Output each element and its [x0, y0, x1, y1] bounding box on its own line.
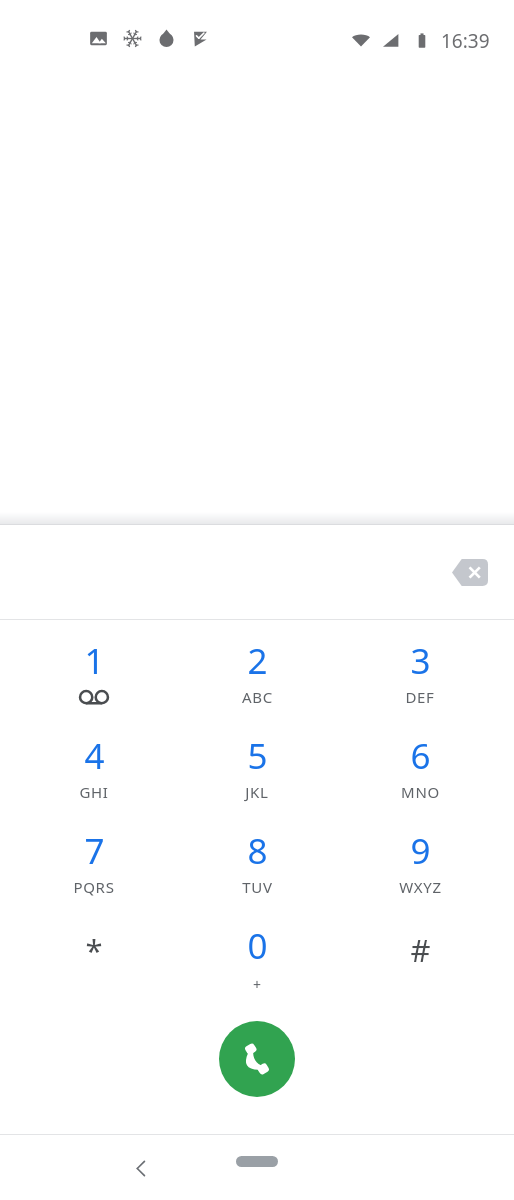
button[interactable]: 5	[182, 720, 332, 810]
staticText: TUV	[242, 877, 273, 897]
button[interactable]: #	[345, 910, 495, 1000]
button[interactable]: 1	[19, 625, 169, 715]
button[interactable]: 2	[182, 625, 332, 715]
staticText: 7	[84, 827, 105, 875]
button[interactable]: 9	[345, 815, 495, 905]
staticText: 1	[84, 637, 105, 685]
staticText: 6	[410, 732, 431, 780]
staticText: 9	[410, 827, 431, 875]
staticText: JKL	[245, 782, 269, 802]
button[interactable]: 4	[19, 720, 169, 810]
staticText: 5	[247, 732, 268, 780]
staticText: ABC	[242, 687, 273, 707]
staticText: #	[410, 929, 431, 971]
button[interactable]: Backspace	[442, 546, 498, 598]
button[interactable]: 6	[345, 720, 495, 810]
staticText: 8	[247, 827, 268, 875]
button[interactable]: 7	[19, 815, 169, 905]
staticText: 2	[247, 637, 268, 685]
staticText: PQRS	[73, 877, 115, 897]
staticText: 4	[84, 732, 105, 780]
button[interactable]: Home	[236, 1156, 278, 1167]
staticText: DEF	[405, 687, 435, 707]
staticText: MNO	[401, 782, 440, 802]
staticText: +	[253, 975, 262, 994]
staticText: *	[85, 929, 103, 971]
staticText: 3	[410, 637, 431, 685]
staticText: 0	[247, 922, 268, 970]
button[interactable]: Back	[119, 1146, 163, 1190]
button[interactable]: 8	[182, 815, 332, 905]
button[interactable]: Call	[219, 1021, 295, 1097]
staticText: GHI	[79, 782, 109, 802]
button[interactable]: 3	[345, 625, 495, 715]
button[interactable]: 0	[182, 910, 332, 1000]
button[interactable]: *	[19, 910, 169, 1000]
staticText: WXYZ	[399, 877, 442, 897]
staticText: 16:39	[441, 28, 490, 54]
